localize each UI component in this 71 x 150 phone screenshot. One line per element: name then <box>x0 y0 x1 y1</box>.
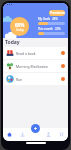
button[interactable]: Settings <box>55 128 68 141</box>
staticText: Run <box>16 77 61 82</box>
staticText: Read a book <box>16 51 61 56</box>
staticText: Morning Meditation <box>16 64 61 69</box>
button[interactable]: Run <box>4 73 67 85</box>
button[interactable]: Morning Meditation <box>4 60 67 72</box>
staticText: Today <box>16 28 24 32</box>
staticText: 68% <box>15 22 25 28</box>
button[interactable]: Add <box>31 124 40 133</box>
button[interactable]: Premium <box>49 10 65 16</box>
staticText: Premium <box>50 11 65 15</box>
button[interactable]: Profile <box>42 128 55 141</box>
staticText: This month 22% <box>38 27 61 31</box>
button[interactable]: Home <box>3 128 16 141</box>
button[interactable]: Read a book <box>4 47 67 59</box>
button[interactable]: Tasks <box>16 128 29 141</box>
staticText: Today <box>5 39 20 46</box>
staticText: My Goals 48% <box>38 17 58 21</box>
